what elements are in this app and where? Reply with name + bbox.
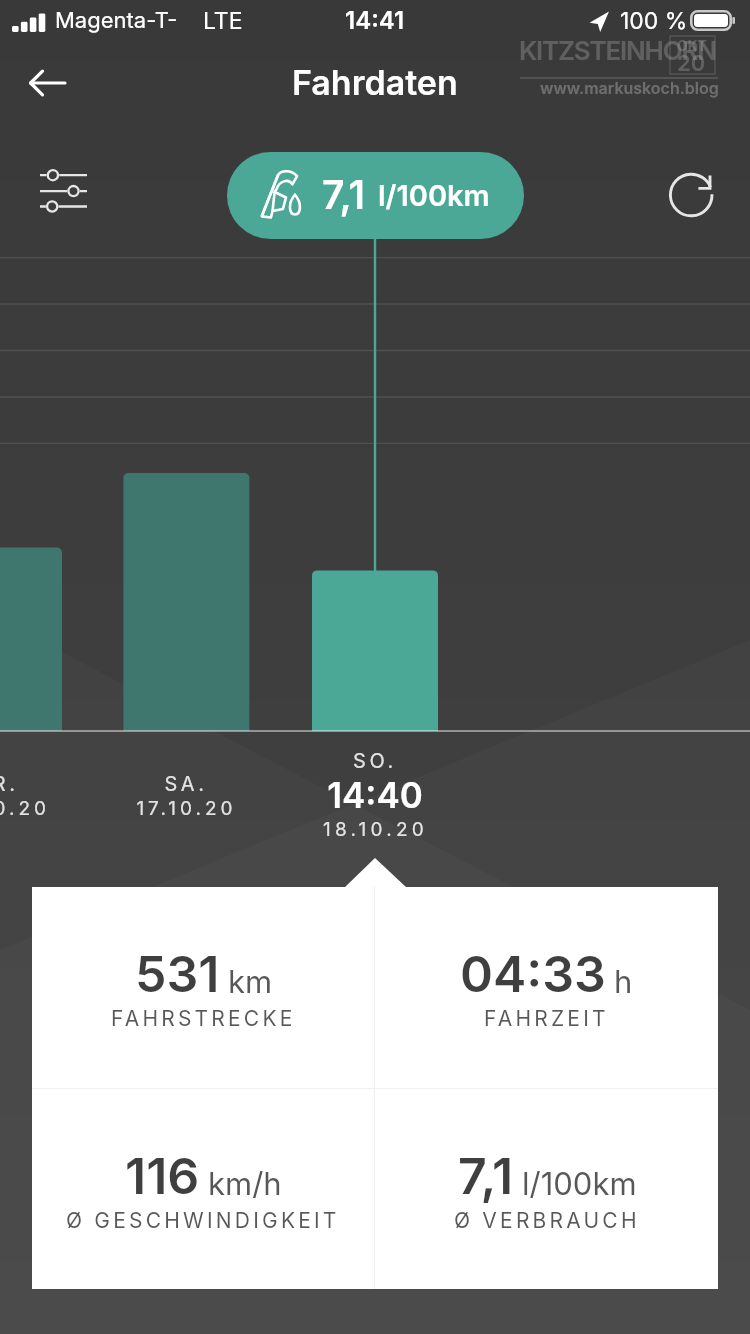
button[interactable]: 7,1 (375, 1089, 718, 1289)
staticText: l/100km (378, 178, 490, 213)
staticText: Ø GESCHWINDIGKEIT (66, 1208, 340, 1233)
staticText: 20 (677, 50, 706, 77)
staticText: KITZSTEINHORN (519, 35, 716, 66)
staticText: h (614, 963, 633, 1001)
staticText: Ø VERBRAUCH (454, 1208, 640, 1233)
staticText: 100 % (620, 7, 688, 35)
staticText: SA. (164, 772, 208, 796)
staticText: 04:33 (460, 944, 606, 1004)
staticText: 531 (135, 944, 220, 1004)
staticText: Fahrdaten (292, 62, 458, 103)
staticText: OKT (677, 37, 707, 54)
staticText: FAHRSTRECKE (111, 1006, 296, 1031)
staticText: 14:41 (345, 6, 405, 35)
staticText: km (228, 963, 273, 1001)
staticText: 17.10.20 (136, 797, 237, 820)
button[interactable]: Back (16, 52, 78, 114)
button[interactable]: 531 (32, 887, 374, 1088)
staticText: 7,1 (322, 171, 366, 218)
staticText: 18.10.20 (323, 818, 428, 841)
staticText: 14:40 (327, 774, 423, 816)
button[interactable]: 04:33 (375, 887, 718, 1088)
button[interactable]: 7,1 (227, 152, 524, 239)
staticText: SO. (353, 749, 397, 773)
staticText: l/100km (522, 1165, 637, 1203)
staticText: 7,1 (458, 1146, 514, 1206)
staticText: LTE (203, 7, 243, 35)
staticText: 16.10.20 (0, 797, 50, 820)
staticText: 116 (125, 1146, 200, 1206)
staticText: www.markuskoch.blog (540, 78, 719, 97)
button[interactable]: 116 (32, 1089, 374, 1289)
staticText: FAHRZEIT (484, 1006, 609, 1031)
button[interactable]: Filter settings (28, 157, 98, 231)
staticText: FR. (0, 772, 19, 796)
button[interactable]: Refresh (652, 158, 726, 232)
staticText: km/h (208, 1165, 282, 1203)
staticText: Magenta-T- (55, 7, 178, 34)
